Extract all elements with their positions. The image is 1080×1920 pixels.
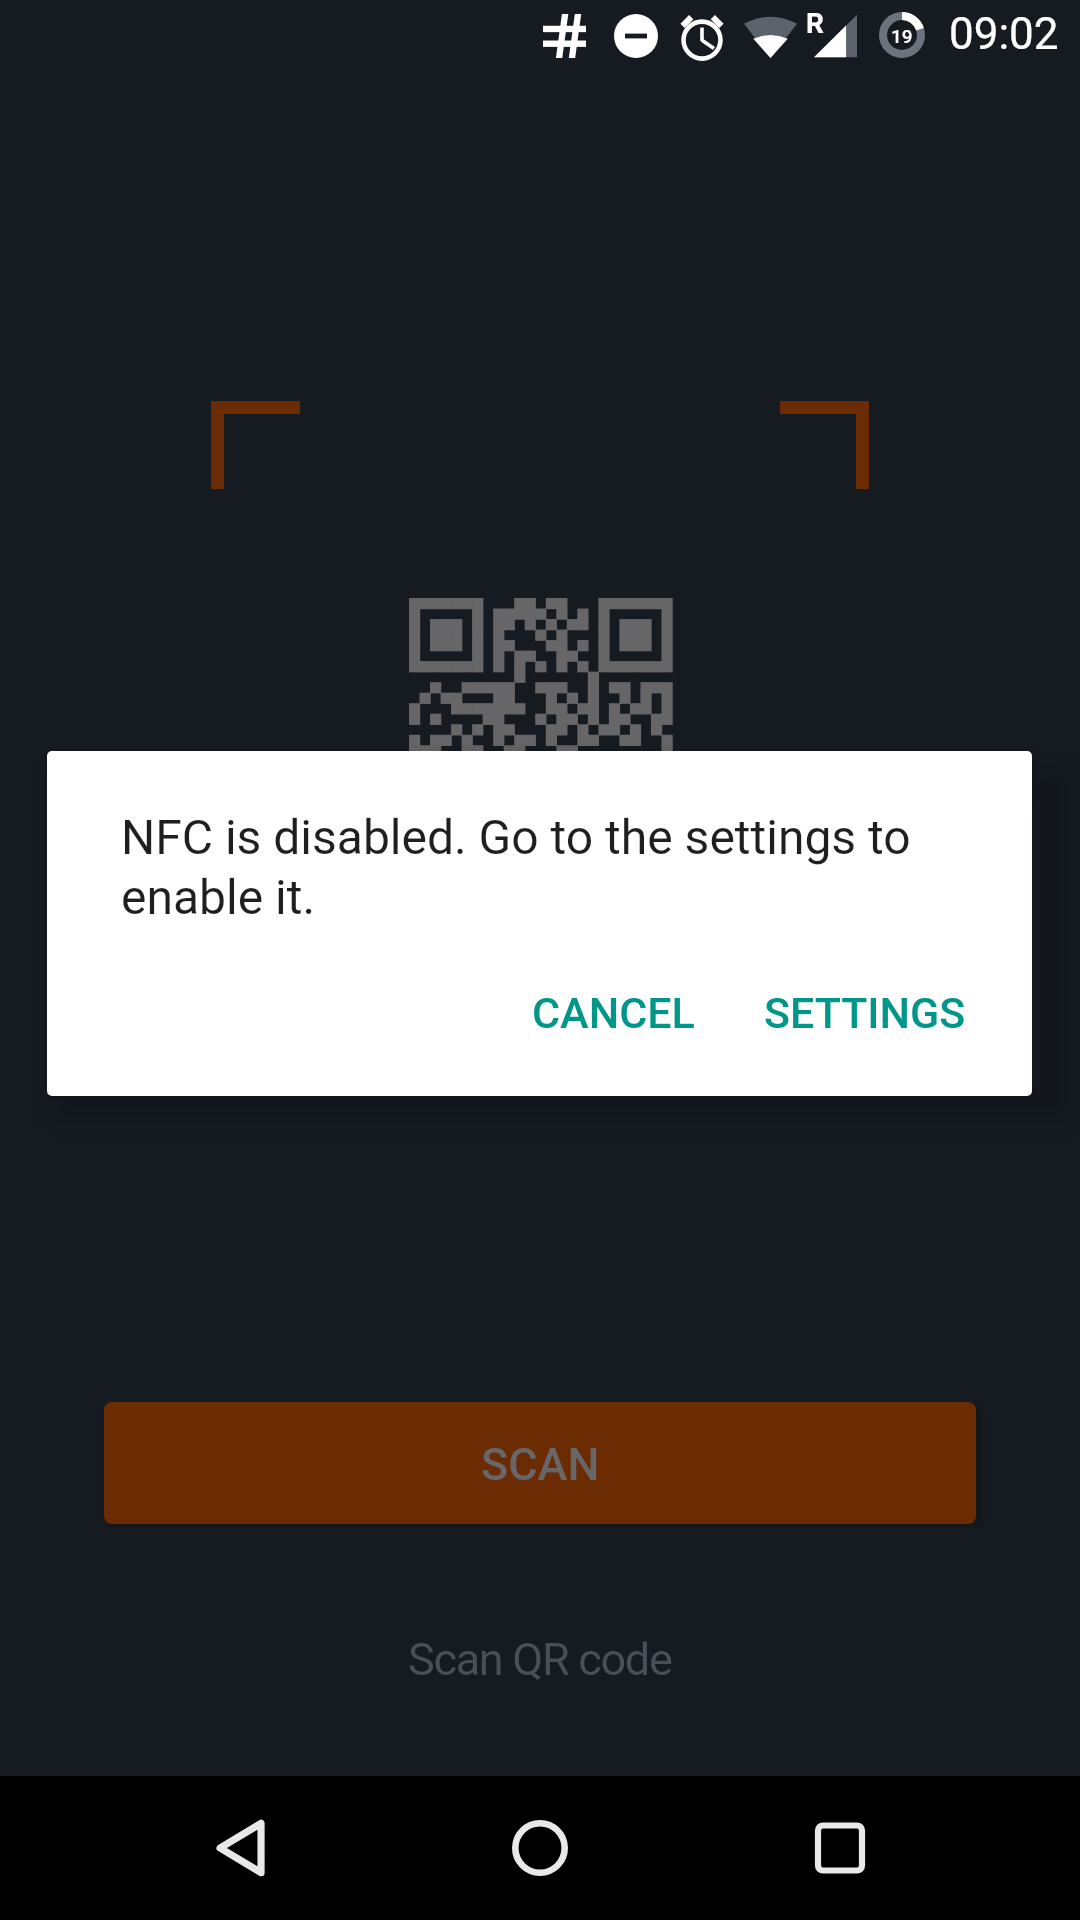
staticText: CANCEL — [532, 988, 695, 1038]
button[interactable]: Recents — [760, 1776, 920, 1920]
staticText: SETTINGS — [764, 988, 966, 1038]
staticText: Scan QR code — [408, 1633, 672, 1686]
button[interactable]: SCAN — [104, 1402, 976, 1524]
button[interactable]: SETTINGS — [742, 968, 988, 1058]
button[interactable]: CANCEL — [510, 968, 717, 1058]
button[interactable]: Back — [160, 1776, 320, 1920]
staticText: 09:02 — [949, 8, 1059, 60]
staticText: SCAN — [481, 1438, 600, 1491]
staticText: R — [806, 7, 824, 40]
staticText: NFC is disabled. Go to the settings to e… — [121, 809, 921, 925]
staticText: 19 — [891, 25, 913, 47]
button[interactable]: Home — [460, 1776, 620, 1920]
